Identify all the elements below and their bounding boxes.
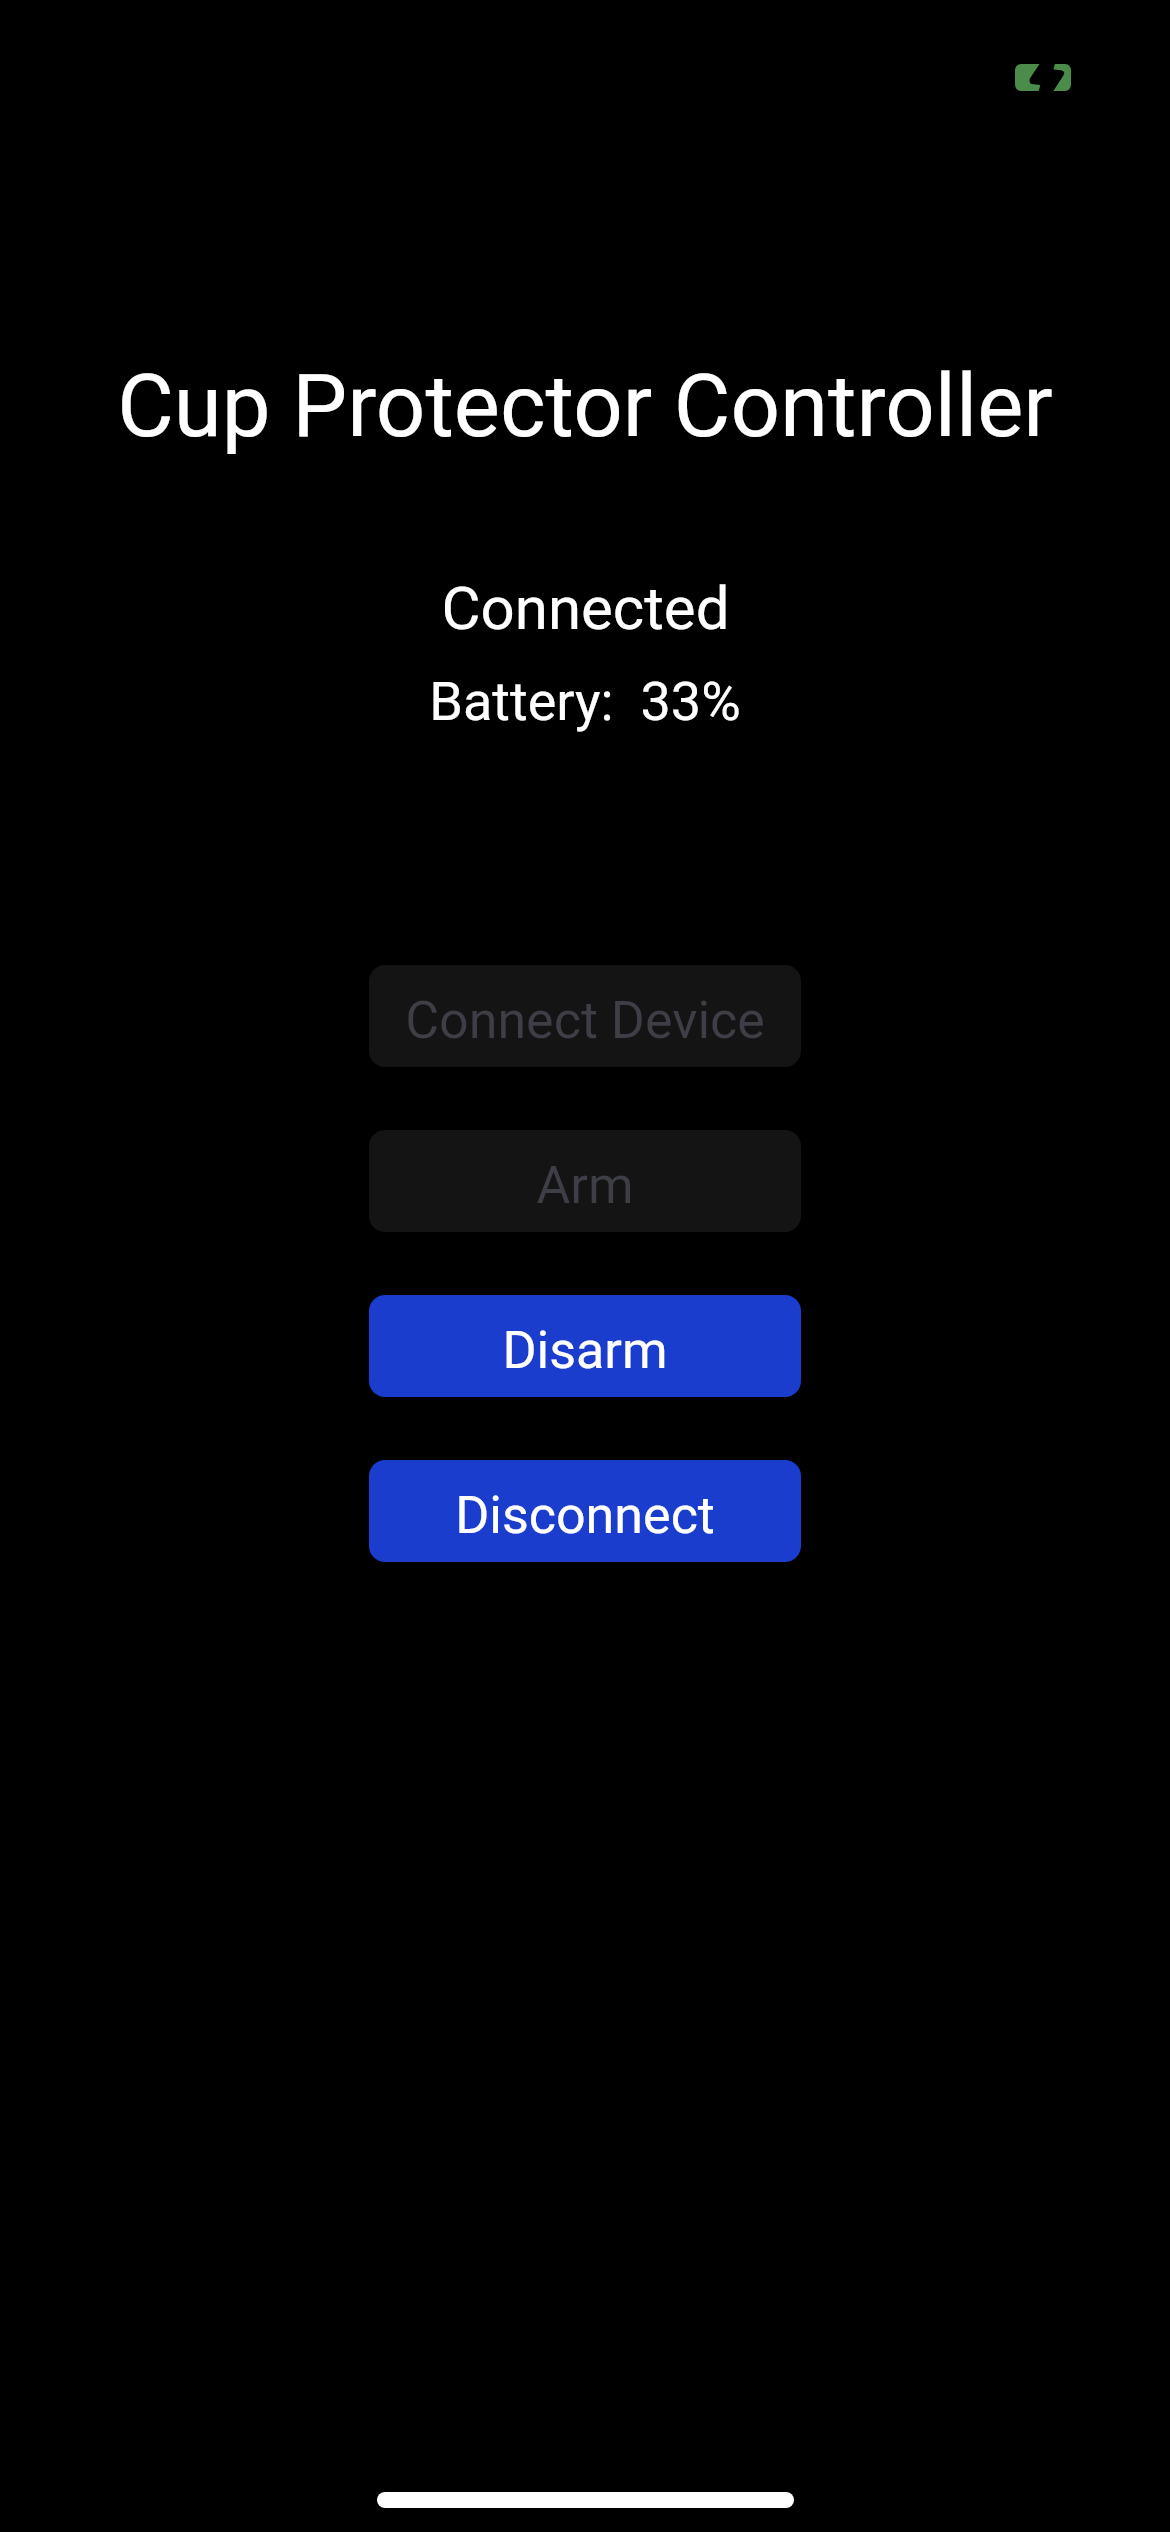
button[interactable]: Disconnect	[369, 1460, 801, 1562]
other: Battery charging	[1015, 64, 1071, 91]
staticText: Connected	[441, 573, 730, 643]
staticText: Disconnect	[455, 1485, 715, 1546]
button[interactable]: Arm	[369, 1130, 801, 1232]
button[interactable]: Connect Device	[369, 965, 801, 1067]
staticText: Arm	[536, 1155, 634, 1216]
staticText: Battery: 33%	[429, 670, 741, 733]
staticText: Cup Protector Controller	[117, 355, 1053, 457]
button[interactable]: Disarm	[369, 1295, 801, 1397]
staticText: Disarm	[502, 1320, 668, 1381]
staticText: Connect Device	[405, 990, 765, 1051]
